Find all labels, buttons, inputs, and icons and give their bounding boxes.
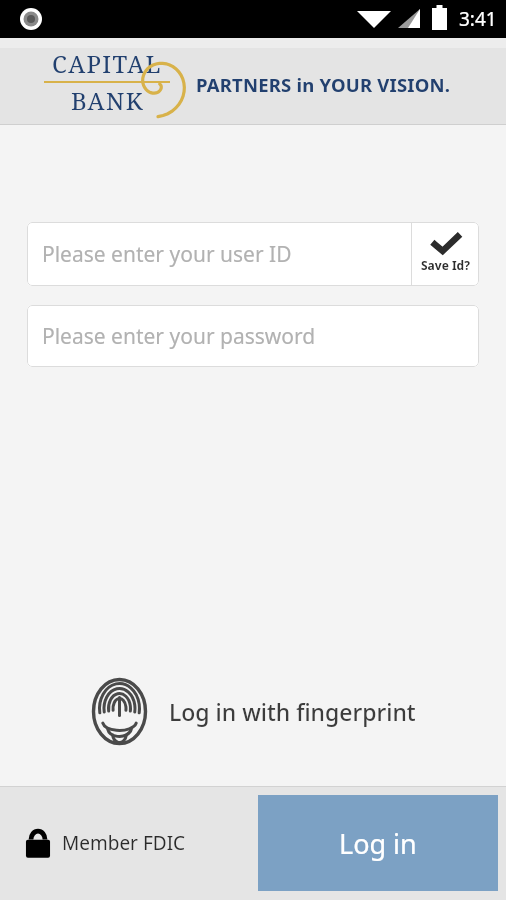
staticText: Please enter your user ID (42, 240, 292, 269)
staticText: Please enter your password (42, 322, 316, 351)
staticText: 3:41 (459, 6, 497, 32)
staticText: Log in with fingerprint (169, 696, 416, 727)
staticText: CAPITAL (52, 47, 162, 80)
staticText: Member FDIC (62, 830, 186, 856)
button[interactable]: Please enter your user ID (27, 222, 411, 286)
button[interactable]: Log in (258, 795, 498, 891)
staticText: BANK (71, 84, 144, 117)
button[interactable]: Member FDIC (24, 827, 186, 859)
staticText: Save Id? (421, 257, 470, 273)
button[interactable]: Log in with fingerprint (0, 683, 506, 740)
staticText: PARTNERS in YOUR VISION. (196, 72, 451, 97)
button[interactable]: Please enter your password (27, 305, 479, 367)
staticText: Log in (339, 825, 417, 862)
button[interactable]: Save Id (412, 222, 479, 286)
